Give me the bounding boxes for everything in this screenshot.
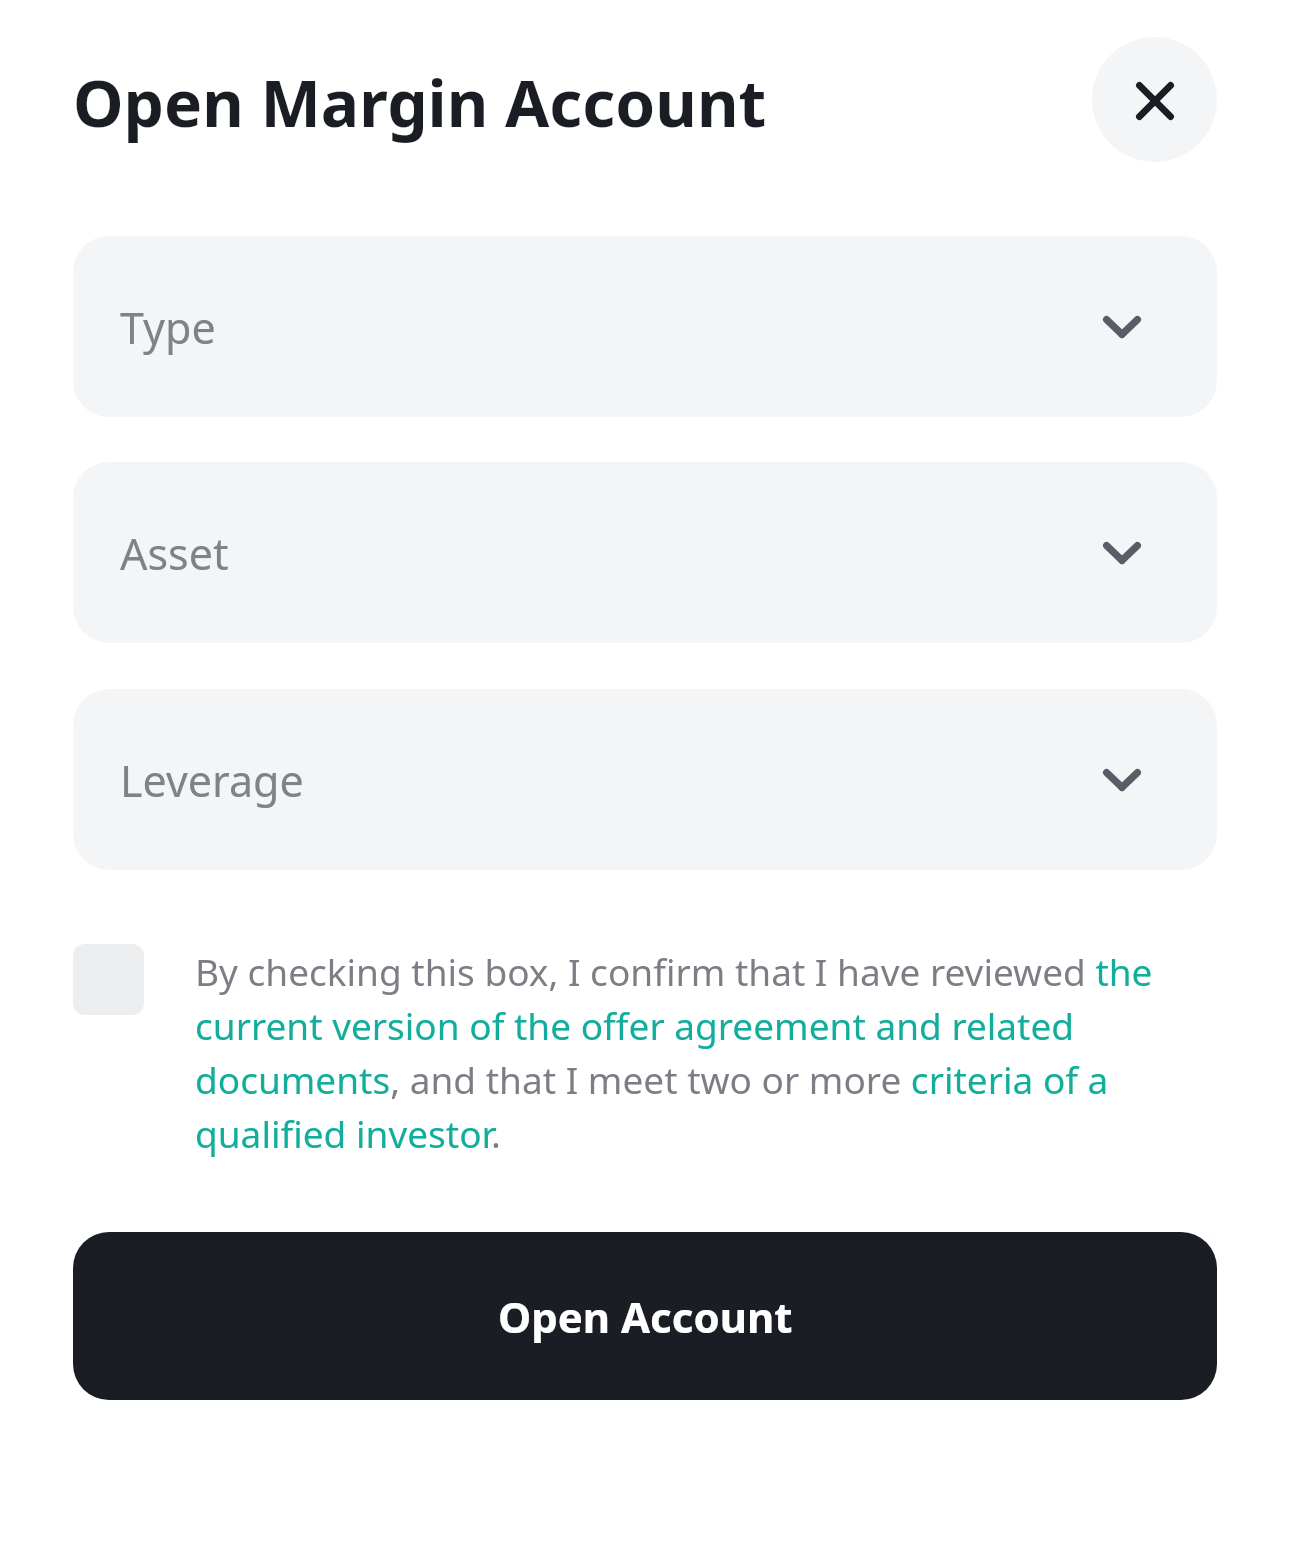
- button[interactable]: Close: [1092, 37, 1217, 162]
- button[interactable]: Leverage: [73, 689, 1217, 870]
- staticText: Open Account: [498, 1288, 793, 1345]
- staticText: Open Margin Account: [73, 59, 767, 146]
- button[interactable]: Asset: [73, 462, 1217, 643]
- staticText: Asset: [120, 524, 229, 583]
- button[interactable]: Type: [73, 236, 1217, 417]
- button[interactable]: Open Account: [73, 1232, 1217, 1400]
- staticText: Type: [120, 298, 216, 357]
- staticText: By checking this box, I confirm that I h…: [195, 944, 1217, 1160]
- staticText: Leverage: [120, 751, 304, 810]
